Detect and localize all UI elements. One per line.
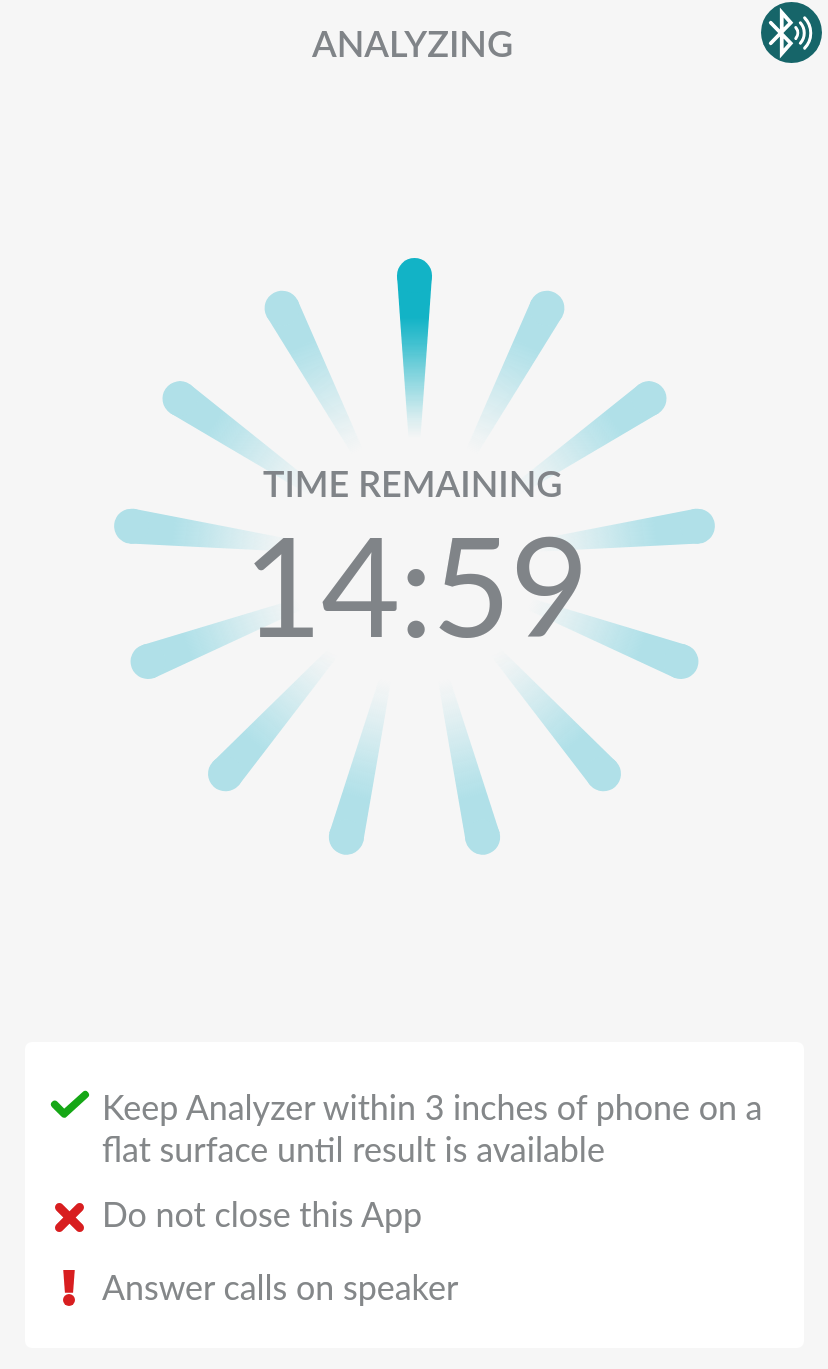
button[interactable]: Keep Analyzer within 3 inches of phone o… [39,1077,789,1181]
staticText: 14:59 [243,502,588,666]
staticText: Keep Analyzer within 3 inches of phone o… [102,1086,763,1170]
staticText: TIME REMAINING [263,461,563,504]
button[interactable]: Answer calls on speaker [39,1256,789,1320]
button[interactable]: Bluetooth connected [761,2,822,63]
button[interactable]: Do not close this App [39,1189,789,1253]
staticText: Do not close this App [102,1193,423,1234]
staticText: ANALYZING [312,21,514,64]
staticText: Answer calls on speaker [102,1266,459,1307]
